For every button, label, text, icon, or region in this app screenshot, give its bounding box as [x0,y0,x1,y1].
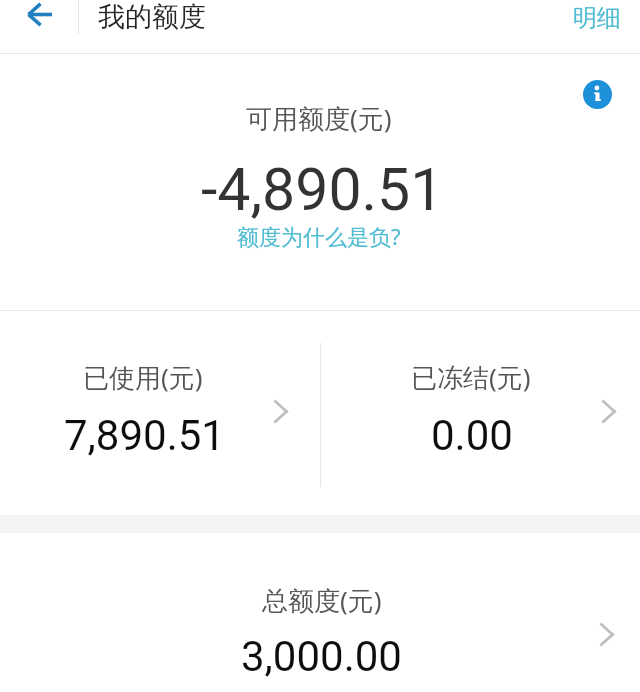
staticText: 可用额度(元) [246,100,392,136]
staticText: 额度为什么是负? [237,221,401,251]
button[interactable]: Info [583,80,612,109]
staticText: 已冻结(元) [411,359,531,395]
button[interactable]: 明细 [549,0,640,43]
staticText: 7,890.51 [64,411,225,460]
staticText: -4,890.51 [201,155,444,224]
button[interactable]: 额度为什么是负? [225,217,413,255]
button[interactable]: 已冻结(元) [321,311,640,515]
staticText: 0.00 [431,411,513,460]
staticText: 明细 [573,3,621,33]
button[interactable]: 总额度(元) [0,533,640,692]
staticText: 我的额度 [98,0,206,34]
staticText: 总额度(元) [262,582,382,618]
staticText: 已使用(元) [83,359,203,395]
button[interactable]: Back [0,0,78,53]
button[interactable]: 已使用(元) [0,311,321,515]
staticText: 3,000.00 [241,632,402,681]
